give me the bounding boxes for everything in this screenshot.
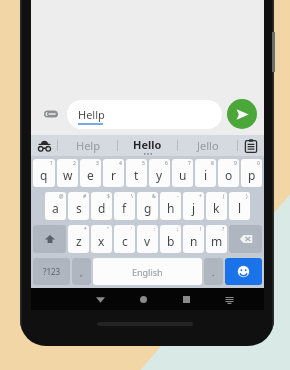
staticText: 8 <box>211 160 214 167</box>
staticText: 9 <box>234 160 237 167</box>
button[interactable]: : <box>137 225 158 253</box>
staticText: e <box>87 167 94 183</box>
button[interactable]: Incognito mode <box>31 135 57 156</box>
button[interactable]: " <box>91 225 112 253</box>
button[interactable]: Hide keyboard <box>79 288 122 310</box>
staticText: 5 <box>142 160 145 167</box>
staticText: 1 <box>50 160 53 167</box>
staticText: x <box>98 233 105 249</box>
staticText: d <box>98 200 106 216</box>
staticText: p <box>248 167 256 183</box>
staticText: c <box>122 233 128 249</box>
button[interactable]: # <box>68 192 89 220</box>
staticText: q <box>40 167 48 183</box>
staticText: b <box>167 233 175 249</box>
staticText: u <box>179 167 187 183</box>
staticText: & <box>152 193 156 200</box>
staticText: j <box>192 200 196 216</box>
button[interactable]: Clipboard <box>238 135 264 156</box>
button[interactable]: 5 <box>126 159 147 187</box>
button[interactable]: + <box>183 192 204 220</box>
button[interactable]: Switch keyboard <box>208 288 251 310</box>
button[interactable]: ! <box>183 225 204 253</box>
staticText: h <box>167 200 175 216</box>
staticText: n <box>190 233 198 249</box>
staticText: a <box>52 200 59 216</box>
button[interactable]: 9 <box>218 159 239 187</box>
staticText: , <box>80 266 83 278</box>
button[interactable]: Home <box>122 288 165 310</box>
button[interactable]: $ <box>91 192 112 220</box>
staticText: Hellp <box>78 107 105 122</box>
button[interactable]: Key <box>229 225 262 253</box>
staticText: s <box>76 200 82 216</box>
staticText: 7 <box>188 160 191 167</box>
staticText: t <box>134 167 139 183</box>
button[interactable]: Attach file <box>38 101 64 127</box>
staticText: ' <box>131 226 133 233</box>
staticText: . <box>212 266 215 278</box>
staticText: ? <box>222 226 225 233</box>
staticText: - <box>177 193 179 200</box>
button[interactable]: \ <box>114 192 135 220</box>
button[interactable]: English <box>93 258 202 285</box>
button[interactable]: ? <box>206 225 227 253</box>
staticText: 4 <box>119 160 122 167</box>
button[interactable]: & <box>137 192 158 220</box>
button[interactable]: 1 <box>33 159 55 187</box>
button[interactable]: Emoji <box>225 258 262 285</box>
staticText: * <box>84 226 87 233</box>
button[interactable]: Key <box>72 258 91 285</box>
button[interactable]: ' <box>114 225 135 253</box>
staticText: " <box>107 226 110 233</box>
button[interactable]: Recents <box>165 288 208 310</box>
staticText: w <box>63 167 73 183</box>
staticText: 6 <box>165 160 168 167</box>
button[interactable]: ; <box>160 225 181 253</box>
button[interactable]: Key <box>33 225 66 253</box>
staticText: @ <box>59 193 64 200</box>
staticText: Help <box>76 138 100 153</box>
staticText: v <box>144 233 151 249</box>
button[interactable]: * <box>68 225 89 253</box>
staticText: r <box>111 167 116 183</box>
button[interactable]: 0 <box>241 159 262 187</box>
button[interactable]: Hello <box>118 135 177 156</box>
button[interactable]: Help <box>58 135 117 156</box>
staticText: l <box>238 200 242 216</box>
button[interactable]: Hellp <box>67 100 222 129</box>
button[interactable]: Key <box>33 258 70 285</box>
staticText: ?123 <box>43 266 61 277</box>
staticText: f <box>122 200 127 216</box>
button[interactable]: 3 <box>80 159 101 187</box>
staticText: \ <box>131 193 133 200</box>
staticText: 0 <box>257 160 260 167</box>
staticText: z <box>76 233 82 249</box>
button[interactable]: - <box>160 192 181 220</box>
button[interactable]: 4 <box>103 159 124 187</box>
staticText: # <box>83 193 87 200</box>
button[interactable]: Send <box>227 99 257 129</box>
button[interactable]: 2 <box>57 159 78 187</box>
button[interactable]: @ <box>45 192 66 220</box>
button[interactable]: Jello <box>178 135 237 156</box>
staticText: o <box>225 167 233 183</box>
button[interactable]: 8 <box>195 159 216 187</box>
staticText: k <box>213 200 220 216</box>
staticText: $ <box>107 193 110 200</box>
staticText: 3 <box>96 160 99 167</box>
staticText: i <box>204 167 208 183</box>
staticText: Jello <box>197 138 219 153</box>
staticText: y <box>156 167 163 183</box>
staticText: English <box>132 266 163 278</box>
staticText: ! <box>200 226 202 233</box>
staticText: 2 <box>73 160 76 167</box>
button[interactable]: 6 <box>149 159 170 187</box>
staticText: ) <box>246 193 248 200</box>
staticText: Hello <box>133 137 162 152</box>
button[interactable]: ( <box>206 192 227 220</box>
button[interactable]: 7 <box>172 159 193 187</box>
button[interactable]: ) <box>229 192 250 220</box>
staticText: + <box>199 193 202 200</box>
button[interactable]: Key <box>204 258 223 285</box>
